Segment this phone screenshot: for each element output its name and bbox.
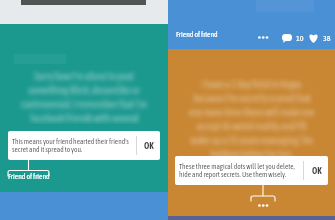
staticText: These three magical dots will let you de…	[179, 162, 295, 170]
staticText: secret and it spread to you.	[12, 145, 83, 153]
button[interactable]: Comments	[282, 34, 304, 43]
button[interactable]: Likes	[308, 33, 331, 43]
staticText: Friend of friend	[176, 30, 218, 39]
staticText: any more time there will make me	[188, 106, 315, 118]
staticText: OK	[144, 141, 154, 151]
button[interactable]: OK	[137, 131, 160, 160]
button[interactable]: More options	[258, 33, 269, 42]
staticText: accept its weird reality and I'll	[196, 120, 307, 132]
button[interactable]: OK	[304, 156, 328, 185]
staticText: 38	[323, 34, 331, 43]
staticText: Friend of friend	[8, 172, 50, 181]
staticText: Sorry how I'm about to post	[34, 70, 134, 82]
staticText: This means your friend hearted their fri…	[12, 137, 129, 145]
staticText: something illicit, dreamlike or	[28, 84, 140, 96]
staticText: facebook friends with several	[30, 112, 139, 124]
staticText: wake up a 35 years managing Tex	[190, 134, 313, 146]
staticText: holdem tables for tips.	[210, 148, 293, 160]
button[interactable]: More options	[258, 201, 269, 210]
staticText: controversial. I remember that I'm	[21, 98, 147, 110]
staticText: OK	[312, 166, 322, 176]
staticText: 10	[296, 34, 304, 43]
button[interactable]: Friend of friend	[176, 30, 218, 39]
staticText: because I'm secretly scared that	[193, 92, 311, 104]
button[interactable]: Friend of friend	[8, 172, 50, 181]
staticText: I have a 2 day field in Vegas	[201, 78, 302, 90]
staticText: hide and report secrets. Use them wisely…	[179, 170, 287, 178]
